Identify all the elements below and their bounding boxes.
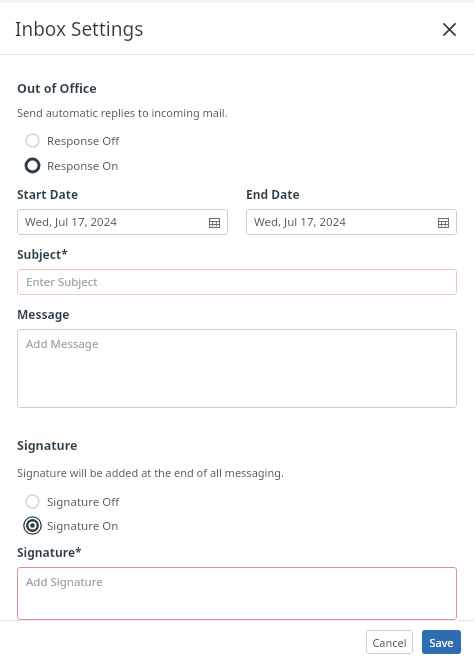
staticText: Wed, Jul 17, 2024 (25, 214, 209, 230)
button[interactable]: Response On (17, 155, 457, 176)
staticText: Cancel (372, 635, 407, 650)
staticText: Add Signature (26, 574, 103, 590)
staticText: Signature* (17, 544, 82, 560)
staticText: Add Message (26, 336, 99, 352)
staticText: Signature will be added at the end of al… (17, 465, 284, 480)
staticText: Signature (17, 437, 78, 454)
staticText: Start Date (17, 186, 79, 202)
button[interactable]: Add Signature (17, 567, 457, 620)
button[interactable]: Close (432, 12, 466, 46)
staticText: Signature Off (47, 494, 120, 510)
staticText: Response Off (47, 133, 120, 149)
staticText: Signature On (47, 518, 119, 534)
button[interactable]: Wed, Jul 17, 2024 (246, 209, 457, 235)
staticText: Send automatic replies to incoming mail. (17, 105, 228, 120)
button[interactable]: Enter Subject (17, 269, 457, 295)
button[interactable]: Signature On (17, 515, 457, 536)
staticText: Inbox Settings (15, 16, 144, 42)
staticText: Out of Office (17, 80, 97, 97)
button[interactable]: Signature Off (17, 491, 457, 512)
staticText: Enter Subject (26, 274, 98, 290)
staticText: Save (429, 635, 454, 650)
button[interactable]: Add Message (17, 329, 457, 408)
button[interactable]: Wed, Jul 17, 2024 (17, 209, 228, 235)
staticText: End Date (246, 186, 300, 202)
staticText: Wed, Jul 17, 2024 (254, 214, 438, 230)
button[interactable]: Response Off (17, 130, 457, 151)
button[interactable]: Cancel (366, 630, 413, 654)
button[interactable]: Save (422, 630, 461, 654)
staticText: Message (17, 306, 70, 322)
staticText: Response On (47, 158, 119, 174)
staticText: Subject* (17, 246, 68, 262)
